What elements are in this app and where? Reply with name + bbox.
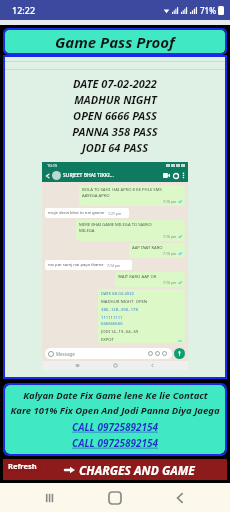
button[interactable]: Voice message — [174, 348, 185, 359]
staticText: Game Pass Proof — [55, 32, 175, 52]
staticText: Kare 101% Fix Open And Jodi Panna Diya J… — [10, 404, 220, 417]
button[interactable]: Kalyan Date Fix Game lene Ke lie Contact — [5, 385, 225, 454]
staticText: DATE 08-02-2022 — [101, 291, 134, 297]
staticText: Kalyan Date Fix Game lene Ke lie Contact — [23, 389, 208, 402]
staticText: 7:16 pm — [163, 199, 177, 204]
staticText: 7:16 pm — [163, 234, 177, 239]
button[interactable]: Recent apps — [33, 483, 69, 512]
staticText: EXPOT — [101, 337, 114, 341]
staticText: BOLA TO SAHI HAI APKO 8 KE PHLE SMS — [82, 187, 162, 193]
button[interactable]: Back — [162, 483, 198, 512]
button[interactable]: Home — [97, 483, 133, 512]
button[interactable]: CALL 09725892154 — [72, 420, 158, 434]
staticText: 7:16 pm — [163, 251, 177, 256]
staticText: 380--128--358--178 — [101, 307, 138, 313]
button[interactable]: WAIT KARO AAP OK — [115, 272, 185, 287]
staticText: AAP INAT KARO — [132, 245, 163, 251]
staticText: 12:22 — [12, 4, 36, 16]
staticText: OPEN 6666 PASS — [73, 108, 157, 123]
staticText: MADHUR NIGHT OPEN — [101, 299, 147, 305]
staticText: WAIT KARO AAP OK — [118, 274, 157, 280]
staticText: Refresh — [8, 461, 37, 471]
button[interactable]: nai par samj nai paya thame — [45, 260, 132, 270]
staticText: MADHUR NIGHT — [74, 92, 157, 107]
staticText: muje dena bhai to nai gaone — [48, 210, 105, 216]
staticText: MERE BHAI GAME MILEGA TO SABKO — [79, 222, 152, 228]
staticText: MILEGA — [79, 228, 95, 234]
staticText: CHARGES AND GAME — [79, 462, 195, 478]
button[interactable]: DATE 08-02-2022 — [98, 289, 185, 343]
staticText: AAYEGA APKO — [82, 193, 110, 199]
staticText: 7:16 pm — [163, 280, 177, 285]
button[interactable]: Refresh — [4, 460, 41, 472]
button[interactable]: muje dena bhai to nai gaone — [45, 208, 129, 218]
button[interactable]: CHARGES AND GAME — [3, 459, 227, 480]
staticText: PANNA 358 PASS — [72, 124, 158, 139]
staticText: 71% — [200, 5, 216, 16]
staticText: 111111111 — [101, 315, 123, 321]
button[interactable]: MERE BHAI GAME MILEGA TO SABKO — [76, 220, 185, 241]
staticText: Message — [56, 351, 75, 357]
staticText: JODI 64 PASS — [82, 140, 148, 155]
staticText: DATE 07-02-2022 — [73, 76, 157, 91]
staticText: nai par samj nai paya thame — [48, 262, 104, 268]
button[interactable]: BOLA TO SAHI HAI APKO 8 KE PHLE SMS — [79, 185, 185, 206]
staticText: JODI 14--19--64--69 — [101, 329, 139, 335]
staticText: 1:21 pm — [108, 211, 122, 216]
button[interactable]: Game Pass Proof — [5, 30, 225, 53]
staticText: 10:15 — [47, 163, 58, 168]
staticText: 7:14 pm — [107, 263, 121, 268]
button[interactable]: AAP INAT KARO — [129, 243, 185, 258]
staticText: SURJEET BHAI TIKKI... — [63, 172, 163, 179]
button[interactable]: CALL 09725892154 — [72, 436, 158, 450]
staticText: 666666666 — [101, 321, 123, 327]
